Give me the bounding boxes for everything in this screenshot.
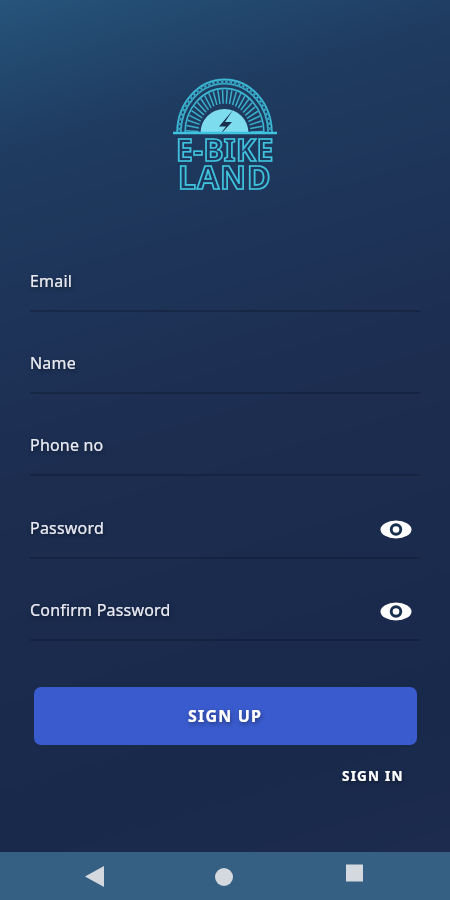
staticText: Name [30, 352, 76, 374]
button[interactable]: SIGN UP [34, 687, 417, 745]
button[interactable] [80, 856, 120, 896]
button[interactable]: Email [30, 270, 420, 318]
staticText: Email [30, 270, 73, 292]
staticText: SIGN IN [342, 767, 404, 785]
button[interactable] [205, 856, 245, 896]
staticText: LAND [178, 155, 272, 199]
staticText: Phone no [30, 434, 104, 456]
button[interactable]: Phone no [30, 434, 420, 482]
button[interactable]: Confirm Password [30, 599, 420, 647]
button[interactable]: Password [30, 517, 420, 565]
button[interactable] [363, 593, 411, 629]
button[interactable] [363, 511, 411, 547]
staticText: SIGN UP [188, 705, 263, 727]
staticText: E-BIKE [176, 129, 274, 170]
staticText: Password [30, 517, 104, 539]
button[interactable]: SIGN IN [330, 758, 416, 794]
button[interactable]: Name [30, 352, 420, 400]
staticText: Confirm Password [30, 599, 171, 621]
button[interactable] [334, 856, 374, 896]
